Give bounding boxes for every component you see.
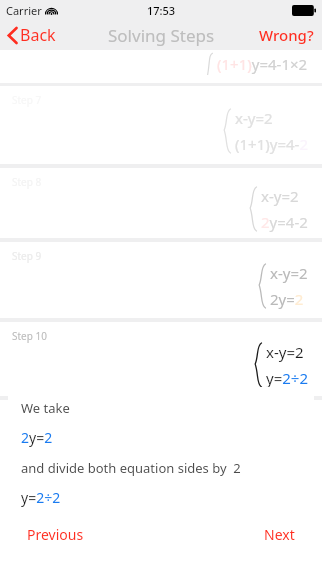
staticText: Step 11 (12, 407, 47, 421)
staticText: (1+1)y=4-1×2 (217, 54, 308, 74)
staticText: x-y=2 (261, 186, 299, 206)
button[interactable]: Wrong? (257, 22, 316, 48)
button[interactable]: Next (258, 522, 301, 547)
staticText: x-y=2 (270, 263, 308, 283)
staticText: y=2÷2 (21, 488, 61, 507)
staticText: and divide both equation sides by 2 (21, 459, 241, 477)
staticText: 2y=4-2 (261, 212, 308, 232)
staticText: x-y=2 (235, 108, 273, 128)
staticText: Step 9 (12, 249, 42, 263)
button[interactable]: Step 9 (0, 242, 322, 318)
staticText: Solving Steps (108, 24, 215, 47)
staticText: Back (20, 24, 56, 46)
staticText: (1+1)y=4-2 (235, 134, 308, 154)
button[interactable]: (1+1)y=4-1×2 (0, 50, 322, 83)
button[interactable]: Step 10 (0, 322, 322, 396)
staticText: Step 8 (12, 175, 42, 189)
staticText: Previous (27, 525, 84, 544)
staticText: We take (21, 399, 70, 417)
button[interactable]: Step 7 (0, 86, 322, 164)
staticText: x-y=2 (266, 342, 304, 362)
staticText: Carrier (6, 3, 42, 18)
staticText: Wrong? (259, 25, 314, 45)
staticText: 17:53 (147, 3, 176, 18)
button[interactable]: Step 11 (0, 400, 322, 572)
staticText: 2y=2 (21, 428, 53, 447)
staticText: y=2÷2 (266, 368, 308, 388)
staticText: Step 10 (12, 329, 47, 343)
button[interactable]: Step 8 (0, 168, 322, 238)
staticText: Next (264, 525, 295, 544)
button[interactable]: Back (6, 21, 58, 49)
staticText: 2y=2 (270, 289, 304, 309)
button[interactable]: Previous (21, 522, 90, 547)
